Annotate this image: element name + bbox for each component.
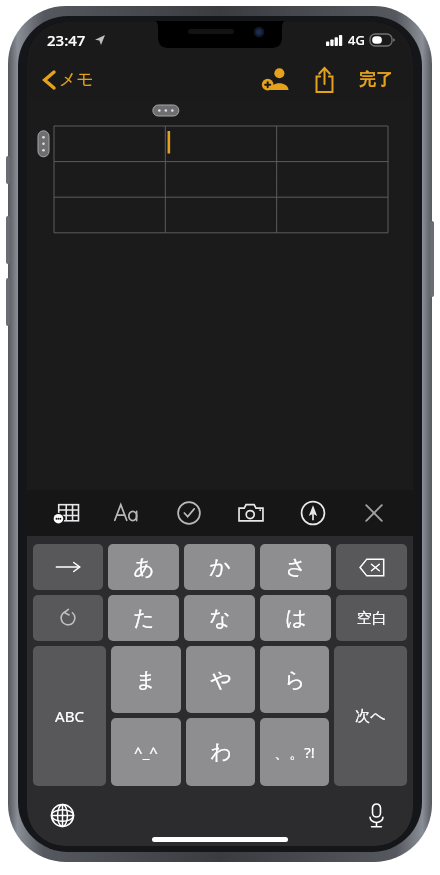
- button[interactable]: マークアップ: [290, 491, 336, 535]
- button[interactable]: や: [186, 646, 255, 713]
- staticText: 、。?!: [274, 742, 315, 762]
- staticText: か: [209, 554, 231, 580]
- button[interactable]: ↺: [33, 595, 103, 641]
- button[interactable]: は: [260, 595, 331, 641]
- button[interactable]: 空白: [336, 595, 407, 641]
- button[interactable]: メモ: [39, 65, 98, 94]
- button[interactable]: か: [184, 544, 255, 590]
- button[interactable]: →: [33, 544, 103, 590]
- button[interactable]: 共同制作者を追加: [259, 62, 293, 96]
- staticText: メモ: [59, 69, 94, 90]
- staticText: た: [133, 605, 155, 631]
- button[interactable]: 閉じる: [351, 491, 397, 535]
- button[interactable]: カメラ: [228, 491, 274, 535]
- button[interactable]: あ: [108, 544, 179, 590]
- staticText: ら: [284, 667, 306, 693]
- button[interactable]: チェックリスト: [166, 491, 212, 535]
- button[interactable]: な: [184, 595, 255, 641]
- staticText: や: [210, 667, 232, 693]
- button[interactable]: さ: [260, 544, 331, 590]
- button[interactable]: 書式: [104, 491, 150, 535]
- staticText: 次へ: [355, 707, 386, 726]
- button[interactable]: ABC: [33, 646, 106, 786]
- staticText: 4G: [348, 31, 365, 49]
- staticText: わ: [210, 739, 232, 765]
- button[interactable]: キーボードを切り替え: [45, 798, 79, 832]
- button[interactable]: ⌫: [336, 544, 407, 590]
- staticText: ABC: [55, 706, 84, 726]
- button[interactable]: ら: [260, 646, 329, 713]
- staticText: な: [209, 605, 231, 631]
- button[interactable]: 音声入力: [359, 798, 393, 832]
- staticText: 23:47: [47, 30, 86, 50]
- button[interactable]: 共有: [307, 62, 341, 96]
- button[interactable]: わ: [186, 718, 255, 786]
- button[interactable]: 、。?!: [260, 718, 329, 786]
- staticText: ^_^: [134, 742, 158, 762]
- staticText: は: [285, 605, 307, 631]
- staticText: さ: [285, 554, 307, 580]
- button[interactable]: ま: [111, 646, 181, 713]
- button[interactable]: た: [108, 595, 179, 641]
- staticText: 空白: [357, 609, 387, 628]
- staticText: 完了: [359, 69, 393, 90]
- staticText: あ: [133, 554, 155, 580]
- button[interactable]: 完了: [353, 63, 399, 96]
- button[interactable]: ^_^: [111, 718, 181, 786]
- staticText: ま: [135, 667, 157, 693]
- button[interactable]: 表: [43, 491, 89, 535]
- button[interactable]: 次へ: [334, 646, 407, 786]
